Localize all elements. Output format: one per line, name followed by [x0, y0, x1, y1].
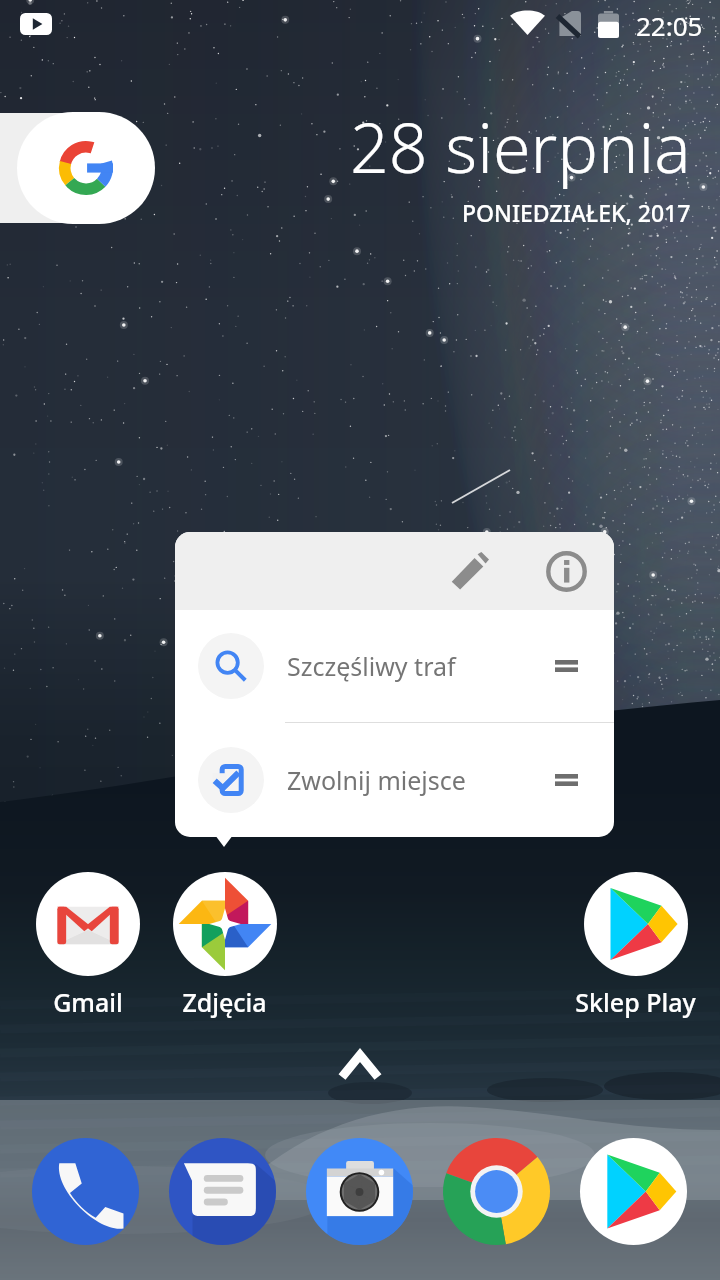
staticText: Zwolnij miejsce — [287, 763, 466, 797]
staticText: Sklep Play — [575, 985, 696, 1019]
button[interactable]: Zdjęcia — [156, 872, 293, 1019]
button[interactable]: Google Search — [17, 112, 155, 224]
button[interactable]: App info — [537, 542, 595, 600]
staticText: PONIEDZIAŁEK, 2017 — [462, 197, 691, 228]
staticText: Zdjęcia — [182, 985, 267, 1019]
button[interactable]: Chrome — [443, 1138, 550, 1245]
button[interactable]: Camera — [306, 1138, 413, 1245]
staticText: Gmail — [53, 985, 123, 1019]
button[interactable]: Gmail — [19, 872, 156, 1019]
button[interactable]: Zwolnij miejsce — [175, 723, 614, 837]
button[interactable]: Edit — [441, 542, 499, 600]
button[interactable]: Sklep Play — [567, 872, 704, 1019]
button[interactable]: Open app drawer — [336, 1046, 384, 1086]
button[interactable]: Phone — [32, 1138, 139, 1245]
button[interactable]: Szczęśliwy traf — [175, 610, 614, 722]
staticText: Szczęśliwy traf — [287, 649, 456, 683]
staticText: 28 sierpnia — [350, 100, 691, 193]
button[interactable]: Play Store — [580, 1138, 687, 1245]
button[interactable]: Messages — [169, 1138, 276, 1245]
staticText: 22:05 — [636, 8, 703, 43]
